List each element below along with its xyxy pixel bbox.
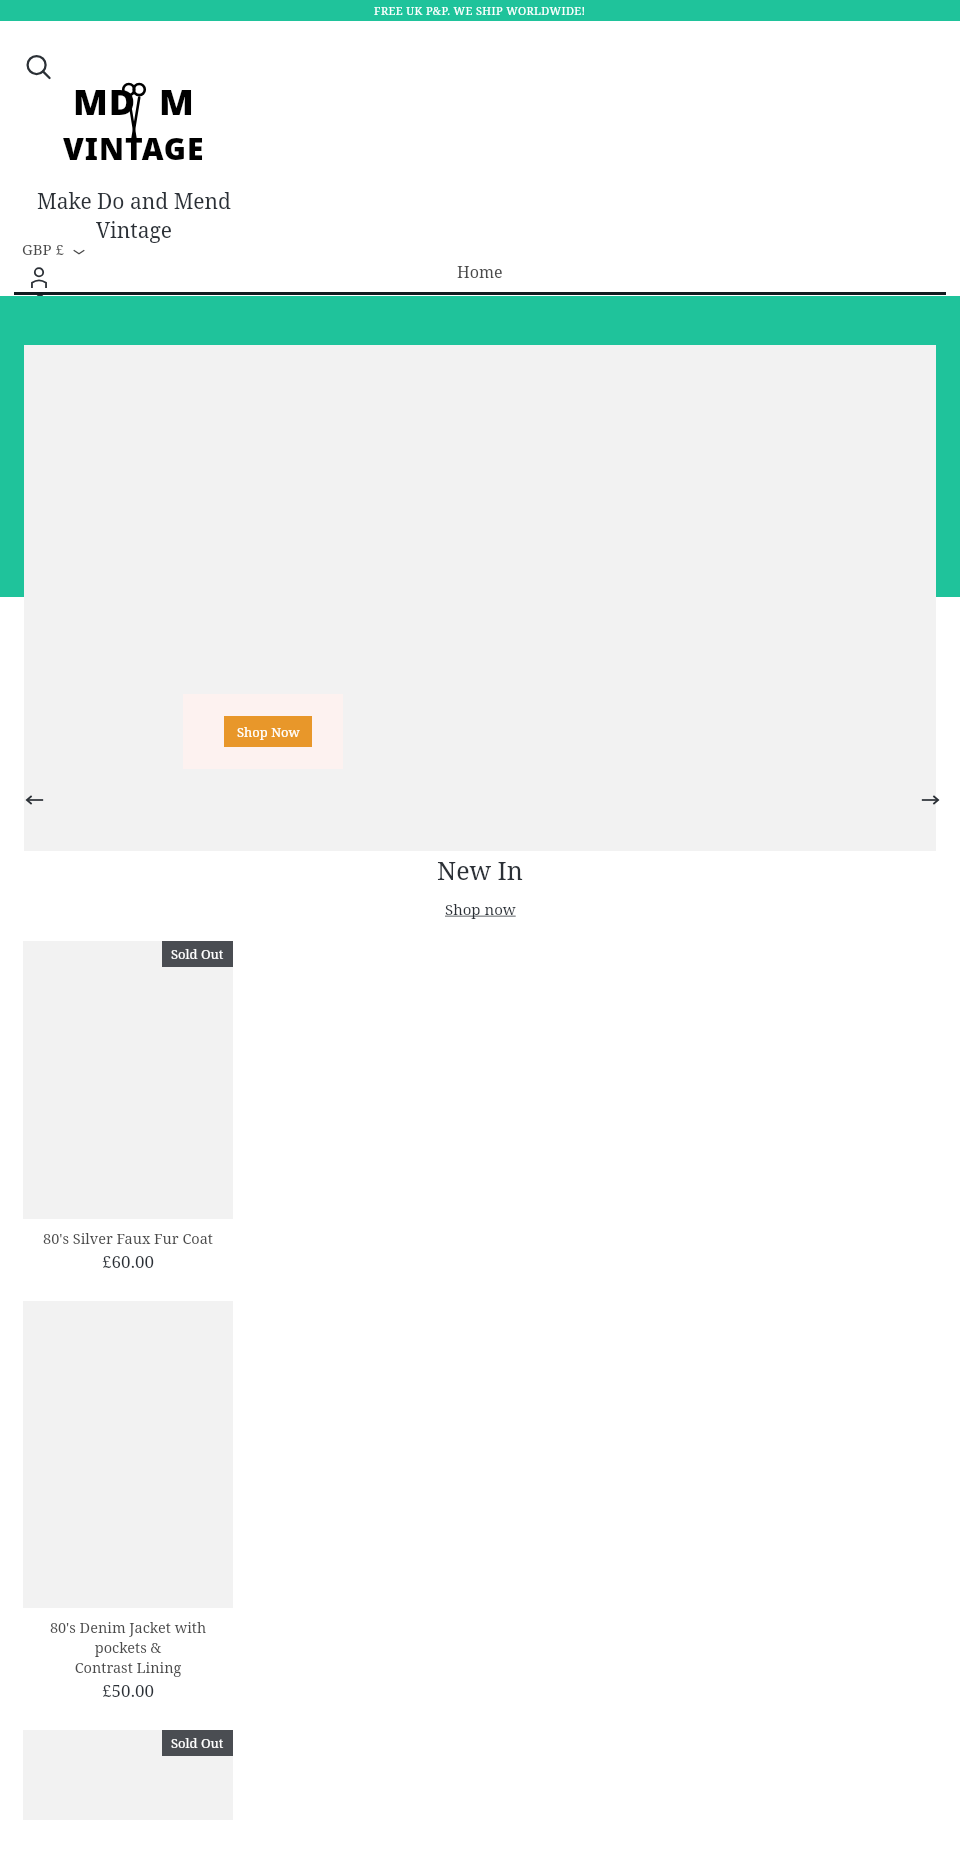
button[interactable]: Shop Now (24, 345, 936, 851)
staticText: Make Do and Mend (0, 187, 268, 216)
staticText: Contrast Lining (23, 1657, 233, 1677)
button[interactable]: Search (22, 51, 56, 85)
staticText: Sold Out (171, 945, 224, 963)
staticText: VINTAGE (63, 128, 205, 169)
button[interactable]: Sold Out (23, 1730, 233, 1874)
staticText: MD (73, 77, 137, 126)
button[interactable]: Next slide (913, 783, 947, 817)
staticText: Vintage (0, 216, 268, 245)
button[interactable]: MD (63, 77, 205, 169)
staticText: New In (0, 853, 960, 887)
staticText: Shop Now (237, 723, 300, 741)
staticText: Home (457, 261, 503, 283)
staticText: Sold Out (171, 1734, 224, 1752)
staticText: M (159, 77, 195, 126)
staticText: £60.00 (23, 1250, 233, 1273)
button[interactable]: Home (0, 261, 960, 295)
staticText: £50.00 (23, 1679, 233, 1702)
button[interactable]: Cart (26, 293, 54, 321)
button[interactable]: GBP £ (22, 239, 86, 259)
button[interactable]: Shop Now (224, 716, 312, 747)
staticText: FREE UK P&P. WE SHIP WORLDWIDE! (374, 3, 586, 18)
button[interactable]: Previous slide (18, 783, 52, 817)
staticText: GBP £ (22, 239, 64, 259)
button[interactable]: Shop now (445, 899, 516, 919)
staticText: Shop now (445, 899, 516, 919)
button[interactable]: Account (26, 265, 52, 291)
button[interactable]: 80's Denim Jacket with pockets & (23, 1301, 233, 1702)
staticText: 80's Silver Faux Fur Coat (23, 1228, 233, 1248)
staticText: 80's Denim Jacket with pockets & (23, 1617, 233, 1657)
button[interactable]: Sold Out (23, 941, 233, 1273)
